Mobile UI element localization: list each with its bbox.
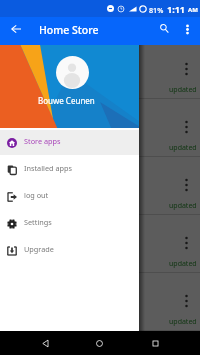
staticText: Settings	[24, 217, 52, 227]
button[interactable]: updated	[0, 273, 200, 331]
staticText: 81%	[149, 5, 164, 15]
button[interactable]: updated	[0, 331, 200, 355]
button[interactable]: Recents	[141, 331, 169, 355]
staticText: updated	[169, 143, 197, 153]
button[interactable]: Back	[31, 331, 59, 355]
staticText: log out	[24, 190, 49, 200]
staticText: updated	[169, 85, 197, 95]
staticText: Store apps	[24, 136, 61, 146]
staticText: Home Store	[39, 23, 99, 37]
button[interactable]: Settings	[0, 211, 139, 236]
staticText: updated	[169, 259, 197, 269]
staticText: Bouwe Ceunen	[38, 95, 95, 106]
staticText: AM	[188, 6, 198, 14]
staticText: 1:11	[167, 3, 185, 15]
button[interactable]: Back	[2, 15, 30, 43]
staticText: Installed apps	[24, 163, 73, 173]
button[interactable]: Installed apps	[0, 157, 139, 182]
button[interactable]: updated	[0, 215, 200, 273]
button[interactable]: Search	[150, 14, 178, 42]
button[interactable]: Upgrade	[0, 238, 139, 263]
button[interactable]: updated	[0, 157, 200, 215]
button[interactable]: updated	[0, 99, 200, 157]
staticText: updated	[169, 201, 197, 211]
button[interactable]: updated	[0, 41, 200, 99]
button[interactable]: More options	[173, 15, 200, 43]
staticText: updated	[169, 317, 197, 327]
button[interactable]: log out	[0, 184, 139, 209]
staticText: Upgrade	[24, 244, 54, 254]
button[interactable]: Store apps	[0, 130, 139, 155]
button[interactable]: Home	[85, 331, 113, 355]
